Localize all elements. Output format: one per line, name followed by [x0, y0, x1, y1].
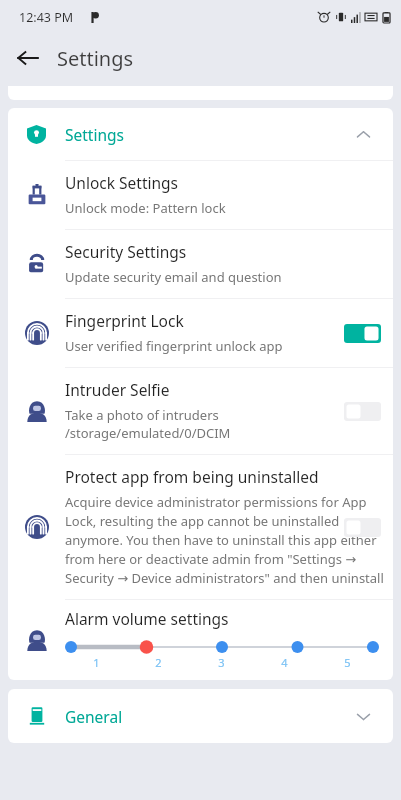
staticText: Protect app from being uninstalled: [65, 466, 319, 487]
button[interactable]: Settings: [8, 108, 393, 160]
staticText: Unlock Settings: [65, 172, 179, 193]
staticText: Settings: [65, 124, 124, 145]
staticText: 1: [93, 655, 100, 670]
staticText: Take a photo of intruders /storage/emula…: [65, 406, 231, 442]
staticText: Security Settings: [65, 241, 187, 262]
staticText: Update security email and question: [65, 268, 282, 286]
staticText: Acquire device administrator permissions…: [65, 493, 385, 587]
button[interactable]: Toggle Fingerprint Lock: [339, 318, 385, 348]
button[interactable]: Security Settings: [8, 230, 393, 298]
staticText: Fingerprint Lock: [65, 310, 184, 331]
staticText: 3: [218, 655, 225, 670]
button[interactable]: Unlock Settings: [8, 161, 393, 229]
staticText: 2: [155, 655, 162, 670]
button[interactable]: General: [8, 689, 393, 743]
staticText: 12:43 PM: [19, 9, 74, 26]
staticText: 4: [281, 655, 288, 670]
button[interactable]: Toggle Intruder Selfie: [339, 396, 385, 426]
staticText: General: [65, 706, 123, 727]
button[interactable]: Toggle Protect app from being uninstalle…: [339, 512, 385, 542]
staticText: Unlock mode: Pattern lock: [65, 199, 226, 217]
button[interactable]: Intruder Selfie: [8, 368, 393, 454]
button[interactable]: Protect app from being uninstalled: [8, 455, 393, 599]
staticText: User verified fingerprint unlock app: [65, 337, 283, 355]
button[interactable]: Back: [8, 38, 48, 78]
staticText: Alarm volume settings: [65, 608, 229, 629]
staticText: Intruder Selfie: [65, 379, 170, 400]
button[interactable]: Fingerprint Lock: [8, 299, 393, 367]
staticText: 5: [344, 655, 351, 670]
staticText: Settings: [57, 45, 134, 72]
